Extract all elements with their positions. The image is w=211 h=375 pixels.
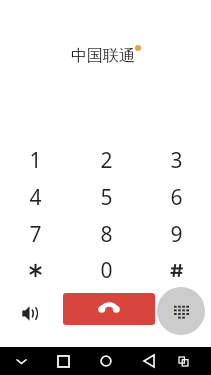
button[interactable]: 0: [71, 253, 141, 288]
button[interactable]: 9: [141, 216, 211, 253]
staticText: 8: [100, 220, 113, 249]
button[interactable]: Back: [135, 347, 163, 375]
button[interactable]: Hide keyboard: [8, 347, 34, 375]
button[interactable]: Rotate screen: [170, 347, 196, 375]
button[interactable]: Speaker: [14, 297, 46, 329]
button[interactable]: Show keypad: [157, 287, 205, 335]
staticText: 中国联通: [71, 46, 135, 66]
staticText: 9: [170, 220, 183, 249]
staticText: 6: [170, 183, 183, 212]
staticText: 0: [100, 256, 113, 285]
staticText: 7: [29, 220, 42, 249]
button[interactable]: [0, 253, 71, 288]
button[interactable]: [141, 253, 211, 288]
button[interactable]: 7: [0, 216, 71, 253]
button[interactable]: 6: [141, 179, 211, 216]
button[interactable]: 5: [71, 179, 141, 216]
staticText: 4: [29, 183, 42, 212]
button[interactable]: 2: [71, 142, 141, 179]
button[interactable]: Home: [92, 347, 120, 375]
staticText: 5: [100, 183, 113, 212]
button[interactable]: Recent apps: [49, 347, 77, 375]
button[interactable]: 8: [71, 216, 141, 253]
button[interactable]: End call: [63, 293, 155, 325]
button[interactable]: 4: [0, 179, 71, 216]
staticText: 3: [170, 146, 183, 175]
button[interactable]: 3: [141, 142, 211, 179]
button[interactable]: 1: [0, 142, 71, 179]
staticText: 2: [100, 146, 113, 175]
staticText: 1: [29, 146, 42, 175]
